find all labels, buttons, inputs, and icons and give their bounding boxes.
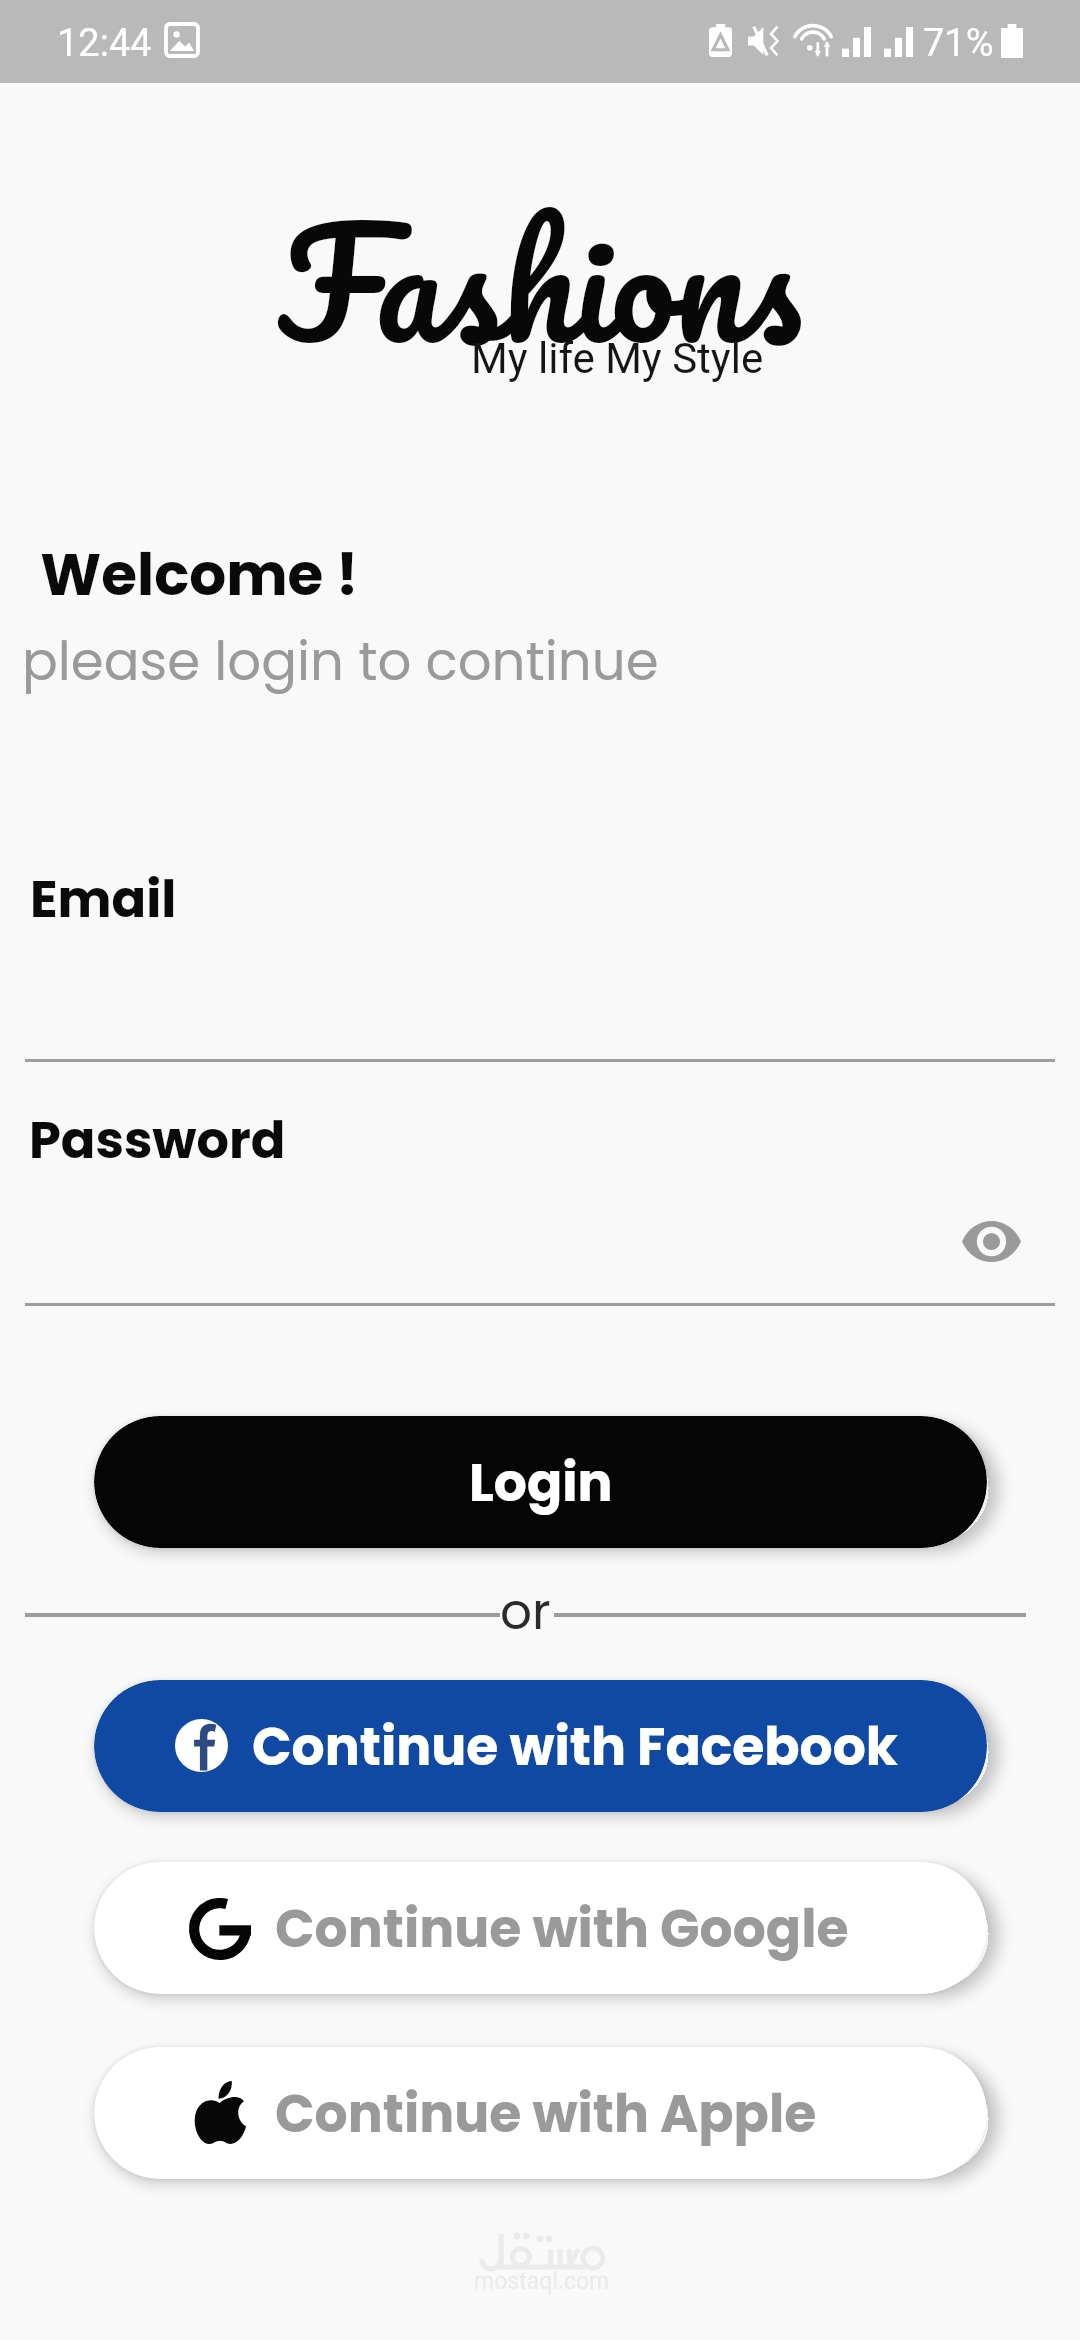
button[interactable]: Continue with Google — [94, 1862, 987, 1994]
button[interactable]: Continue with Apple — [94, 2047, 987, 2179]
staticText: Fashions — [278, 156, 802, 407]
staticText: Login — [469, 1446, 613, 1519]
staticText: 12:44 — [57, 21, 152, 66]
button[interactable]: Show password — [933, 1186, 1049, 1296]
button[interactable]: Login — [94, 1416, 987, 1548]
staticText: Continue with Apple — [275, 2077, 817, 2150]
staticText: please login to continue — [22, 624, 659, 698]
staticText: or — [500, 1577, 551, 1647]
staticText: Continue with Google — [275, 1892, 849, 1965]
staticText: Email — [30, 863, 177, 934]
staticText: My life My Style — [471, 334, 764, 383]
staticText: 71% — [923, 21, 994, 66]
staticText: mostaql.com — [474, 2268, 610, 2295]
staticText: Welcome ! — [28, 534, 359, 615]
staticText: Continue with Facebook — [252, 1710, 898, 1783]
button[interactable]: Continue with Facebook — [94, 1680, 987, 1812]
staticText: Password — [29, 1104, 286, 1175]
